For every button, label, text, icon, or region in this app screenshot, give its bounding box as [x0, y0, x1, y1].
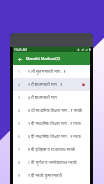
button[interactable]: 2: [13, 78, 90, 91]
staticText: 3: [18, 95, 20, 100]
staticText: ६ वी माध्यमिक शिक्षण भाग - १ मराठ: [28, 134, 81, 139]
staticText: ४ थी माध्यमिक शिक्षण भाग - १ मराठी: [28, 108, 83, 113]
button[interactable]: 6: [13, 130, 90, 143]
button[interactable]: Back: [16, 55, 24, 63]
staticText: ८ वी भूगोल व नागरिकशास्त्र मराठी: [28, 160, 77, 165]
staticText: 5: [18, 121, 20, 126]
staticText: 7: [18, 147, 20, 152]
staticText: 8: [18, 160, 20, 165]
staticText: २ री बालभारती भाग - १: [28, 82, 63, 87]
staticText: 6: [18, 134, 20, 139]
button[interactable]: 5: [13, 117, 90, 130]
staticText: 4: [18, 108, 20, 113]
button[interactable]: 4: [13, 104, 90, 117]
staticText: ७ वी इतिहास व राज्यशास्त्र मराठी: [28, 147, 76, 152]
button[interactable]: 8: [13, 156, 90, 169]
staticText: 9: [18, 173, 20, 178]
staticText: १ ली सुलभभारती भाग - १: [28, 69, 66, 74]
staticText: ९ वी मराठी कुमारभारती: [28, 173, 62, 178]
staticText: ५ वी माध्यमिक शिक्षण भाग - १ मराठ: [28, 121, 81, 126]
button[interactable]: 9: [13, 169, 90, 182]
button[interactable]: 7: [13, 143, 90, 156]
staticText: Marathi Medium(X): [26, 56, 60, 61]
button[interactable]: 1: [13, 65, 90, 78]
staticText: 1: [18, 69, 20, 74]
staticText: ३ री बालभारती भाग: [28, 95, 57, 100]
staticText: 2: [18, 82, 20, 87]
staticText: 10:46 AM: [14, 48, 28, 52]
button[interactable]: 3: [13, 91, 90, 104]
